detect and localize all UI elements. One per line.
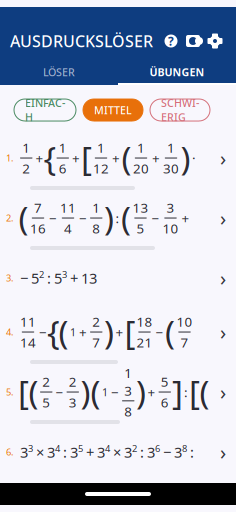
staticText: { <box>43 136 56 180</box>
button[interactable]: 6. <box>0 429 236 483</box>
staticText: − <box>39 323 47 341</box>
staticText: − <box>151 209 159 227</box>
staticText: 3 <box>47 442 55 462</box>
staticText: ÜBUNGEN <box>149 65 204 79</box>
staticText: 2 <box>39 268 44 281</box>
staticText: 8 <box>92 219 100 237</box>
button[interactable]: MITTEL <box>83 99 143 121</box>
staticText: + <box>147 383 155 401</box>
staticText: 2. <box>6 212 14 224</box>
staticText: EINFACH <box>25 96 65 124</box>
button[interactable]: 1. <box>0 135 236 195</box>
staticText: 14 <box>20 333 36 351</box>
staticText: 5 <box>136 219 144 237</box>
staticText: 11 <box>20 313 36 330</box>
staticText: 6 <box>59 159 67 177</box>
staticText: 18 <box>136 313 152 330</box>
staticText: ) <box>104 310 114 354</box>
staticText: › <box>220 379 226 405</box>
staticText: ( <box>90 370 100 414</box>
staticText: 1 <box>137 139 145 156</box>
button[interactable]: SCHWIERIG <box>150 99 210 121</box>
staticText: − <box>20 268 28 288</box>
staticText: − <box>55 383 63 401</box>
staticText: [ <box>189 370 200 414</box>
staticText: + <box>70 268 78 288</box>
staticText: 3 <box>70 442 78 462</box>
staticText: 1 <box>92 199 100 216</box>
staticText: + <box>181 209 189 227</box>
staticText: 11 <box>60 199 76 216</box>
staticText: 3 <box>166 199 174 216</box>
staticText: 5. <box>6 386 14 398</box>
button[interactable]: Settings <box>204 30 226 52</box>
staticText: 3 <box>20 442 28 462</box>
button[interactable]: 3. <box>0 255 236 309</box>
staticText: + <box>72 149 80 167</box>
staticText: LÖSER <box>43 65 75 79</box>
staticText: ) <box>180 136 190 180</box>
staticText: ( <box>165 310 175 354</box>
staticText: 10 <box>162 219 178 237</box>
staticText: 13 <box>132 199 148 216</box>
staticText: 6. <box>6 446 14 458</box>
staticText: ( <box>199 370 209 414</box>
staticText: ? <box>168 33 174 49</box>
button[interactable]: ÜBUNGEN <box>118 61 236 85</box>
staticText: 20 <box>133 159 149 177</box>
button[interactable]: 2. <box>0 195 236 255</box>
staticText: + <box>35 149 43 167</box>
staticText: ) <box>104 196 114 240</box>
staticText: + <box>112 149 120 167</box>
staticText: − <box>79 209 87 227</box>
staticText: 10 <box>176 313 192 330</box>
staticText: 8 <box>182 442 187 455</box>
staticText: 5 <box>78 442 83 455</box>
staticText: 7 <box>34 199 42 216</box>
staticText: 5 <box>161 373 169 390</box>
staticText: 3 <box>174 442 182 462</box>
staticText: › <box>220 439 226 465</box>
staticText: 3 <box>62 268 67 281</box>
staticText: 3 <box>124 442 132 462</box>
staticText: ] <box>172 370 183 414</box>
staticText: 4 <box>55 442 60 455</box>
staticText: 6 <box>155 442 160 455</box>
button[interactable]: EINFACH <box>14 99 76 121</box>
button[interactable]: Help <box>160 30 182 52</box>
staticText: 1 <box>167 139 175 156</box>
staticText: 3 <box>69 393 77 411</box>
staticText: + <box>79 323 87 341</box>
staticText: · <box>192 149 196 167</box>
button[interactable]: 4. <box>0 309 236 369</box>
button[interactable]: 5. <box>0 369 236 429</box>
staticText: 3 <box>147 442 155 462</box>
staticText: 30 <box>163 159 179 177</box>
staticText: : <box>140 442 144 462</box>
staticText: + <box>152 149 160 167</box>
staticText: MITTEL <box>94 103 132 117</box>
staticText: 5 <box>54 268 62 288</box>
staticText: − <box>49 209 57 227</box>
staticText: + <box>115 323 123 341</box>
staticText: 1 <box>102 385 108 399</box>
button[interactable]: Toggle contrast <box>182 30 204 52</box>
staticText: 2 <box>132 442 137 455</box>
staticText: 4 <box>105 442 110 455</box>
staticText: › <box>220 319 226 345</box>
staticText: [ <box>18 370 29 414</box>
staticText: 6 <box>161 393 169 411</box>
staticText: 5 <box>31 268 39 288</box>
staticText: × <box>113 442 121 462</box>
staticText: 1 <box>59 139 67 156</box>
staticText: ( <box>28 370 38 414</box>
staticText: 5 <box>42 393 50 411</box>
staticText: { <box>47 310 60 354</box>
button[interactable]: LÖSER <box>0 61 118 85</box>
staticText: 3 <box>97 442 105 462</box>
staticText: ) <box>136 370 146 414</box>
staticText: › <box>220 205 226 231</box>
staticText: − <box>155 323 163 341</box>
staticText: − <box>111 383 119 401</box>
staticText: SCHWIERIG <box>161 96 199 124</box>
